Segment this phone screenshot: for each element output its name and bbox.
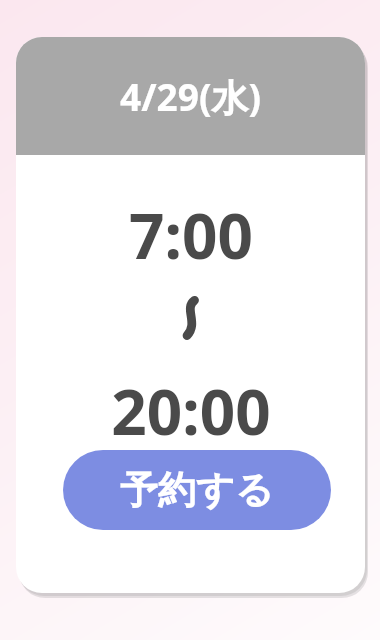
staticText: 4/29(水) xyxy=(120,71,261,122)
staticText: 予約する xyxy=(120,466,274,514)
staticText: 7:00 xyxy=(129,193,253,277)
button[interactable]: 予約する xyxy=(63,450,331,530)
staticText: 20:00 xyxy=(111,369,271,453)
